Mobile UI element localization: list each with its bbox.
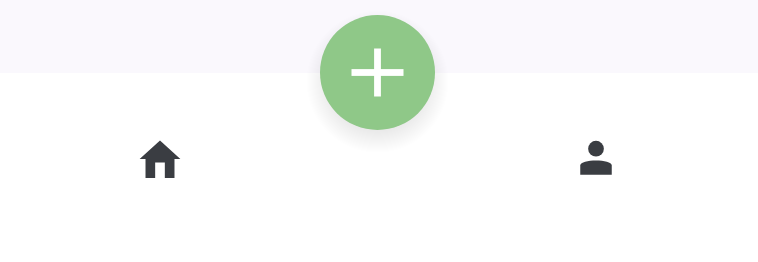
button[interactable]: Profile	[560, 123, 632, 195]
button[interactable]: Home	[124, 123, 196, 195]
button[interactable]: Add	[300, 0, 455, 150]
